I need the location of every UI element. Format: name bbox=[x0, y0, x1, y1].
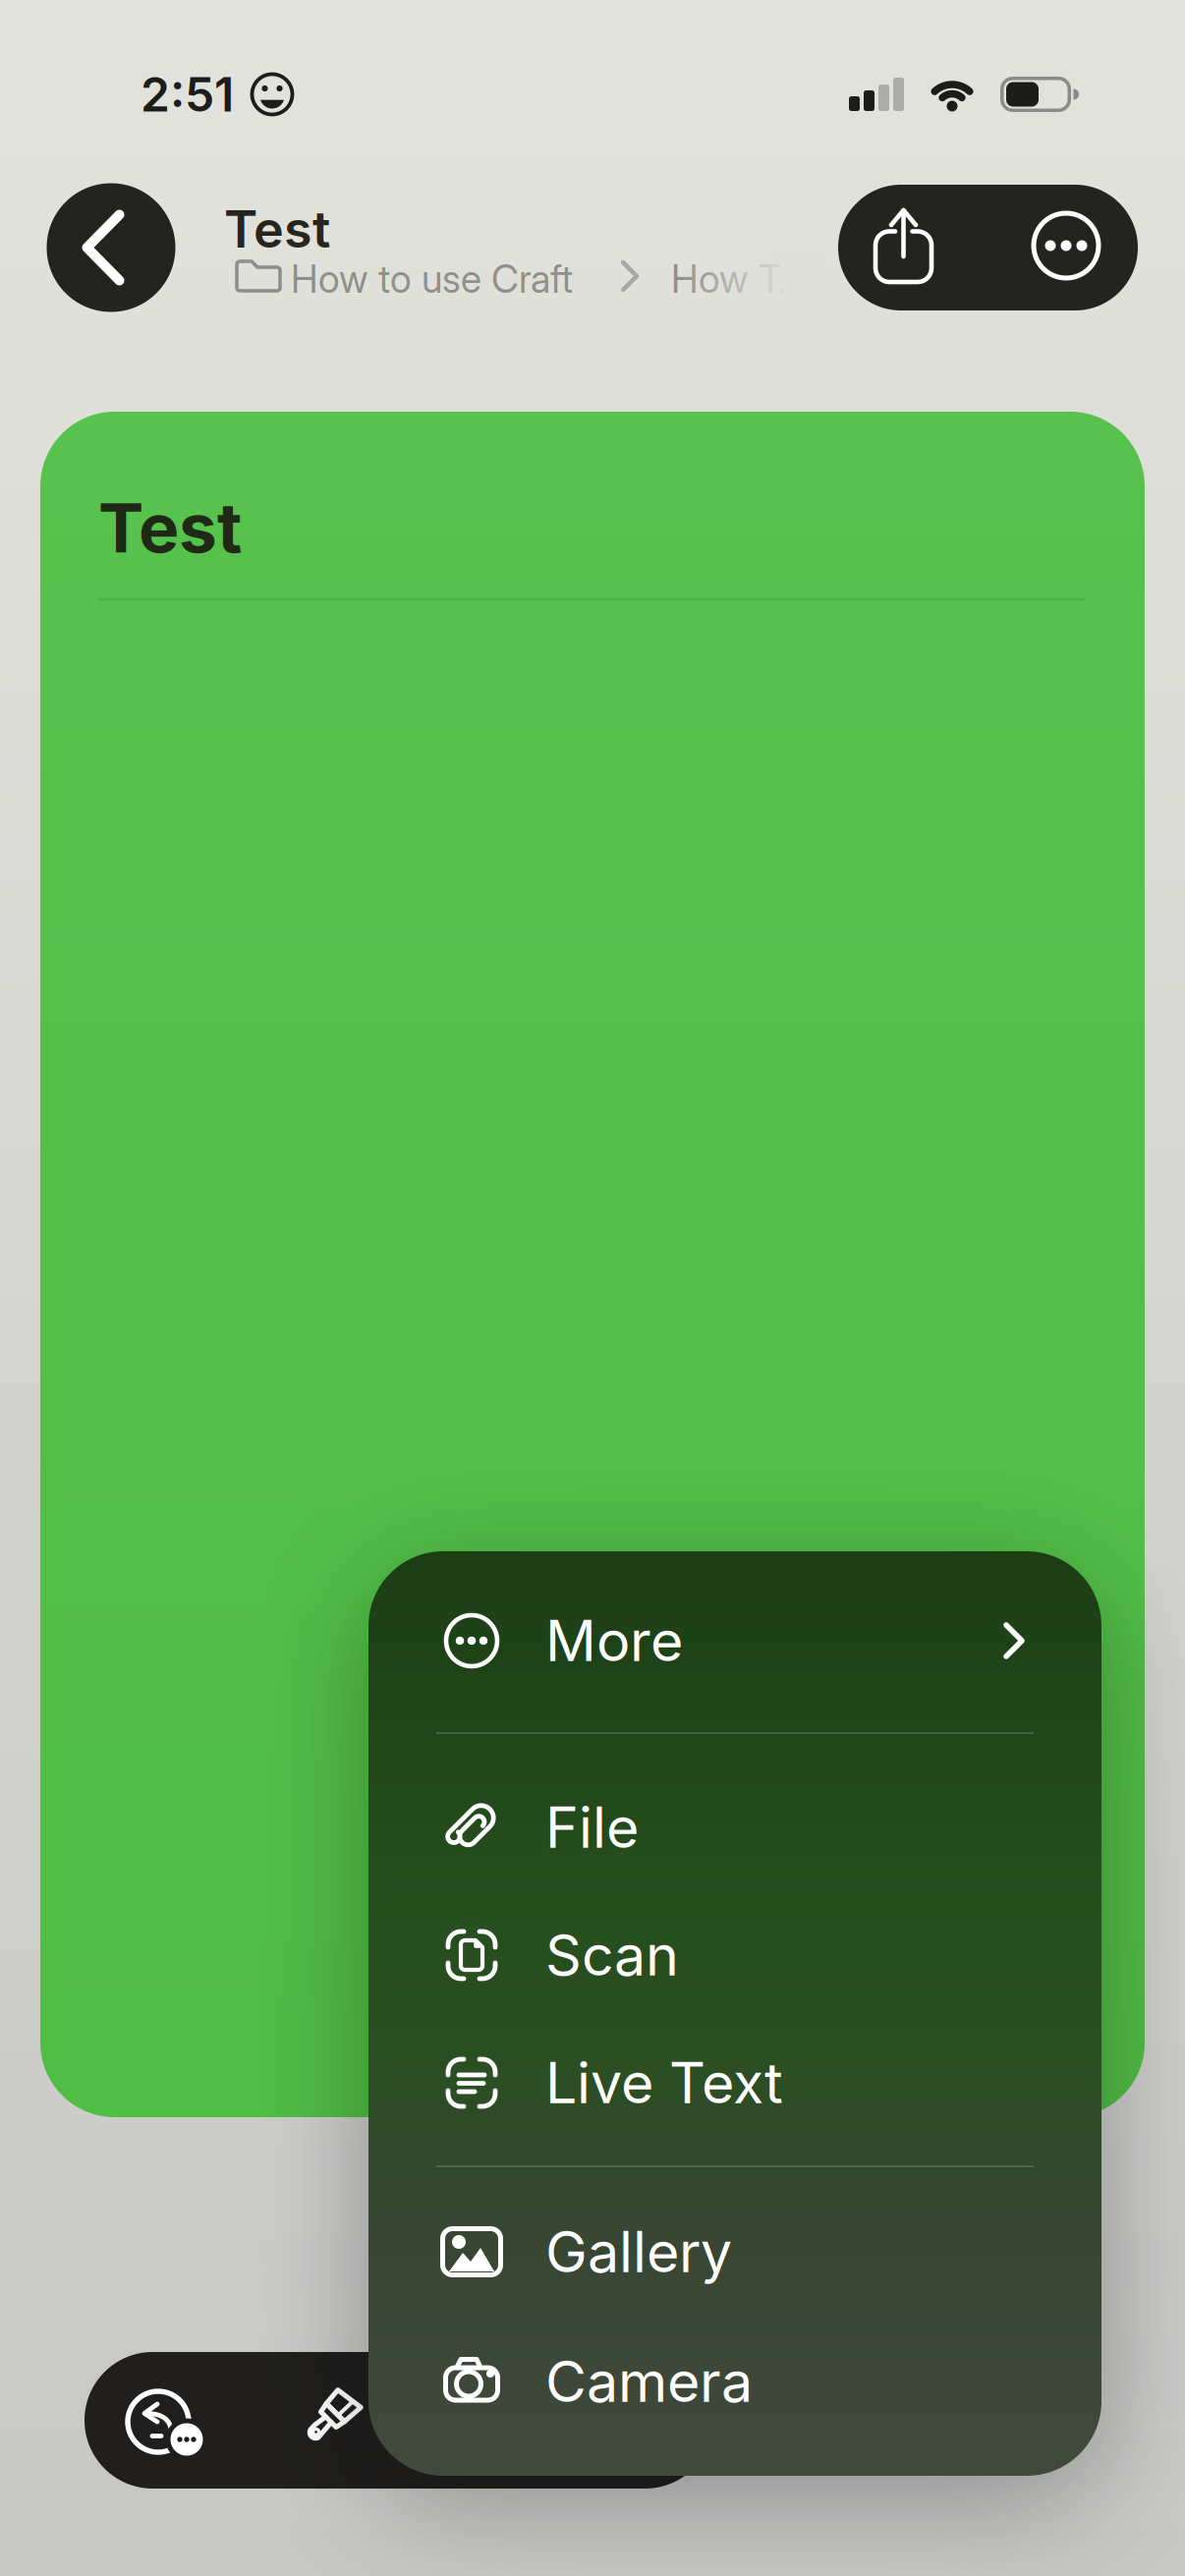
staticText: How to use Craft bbox=[291, 257, 573, 301]
button[interactable]: Style bbox=[278, 2372, 376, 2470]
button[interactable]: Gallery bbox=[368, 2188, 1101, 2316]
button[interactable]: Scan bbox=[368, 1891, 1101, 2019]
staticText: Test bbox=[224, 199, 330, 259]
button[interactable]: More options bbox=[1027, 206, 1105, 285]
staticText: Gallery bbox=[545, 2219, 732, 2285]
button[interactable]: Live Text bbox=[368, 2019, 1101, 2147]
staticText: Test bbox=[98, 487, 242, 568]
button[interactable]: File bbox=[368, 1764, 1101, 1891]
button[interactable]: Back bbox=[47, 183, 175, 312]
button[interactable]: More bbox=[368, 1577, 1101, 1705]
staticText: Scan bbox=[545, 1922, 679, 1988]
staticText: 2:51 bbox=[141, 67, 234, 122]
button[interactable]: Undo bbox=[109, 2369, 217, 2477]
staticText: How To Use bbox=[671, 257, 824, 301]
staticText: File bbox=[545, 1794, 639, 1861]
button[interactable]: Share bbox=[854, 192, 953, 300]
staticText: Live Text bbox=[545, 2050, 783, 2116]
staticText: More bbox=[545, 1607, 683, 1674]
staticText: Camera bbox=[545, 2348, 753, 2415]
button[interactable]: Camera bbox=[368, 2318, 1101, 2445]
